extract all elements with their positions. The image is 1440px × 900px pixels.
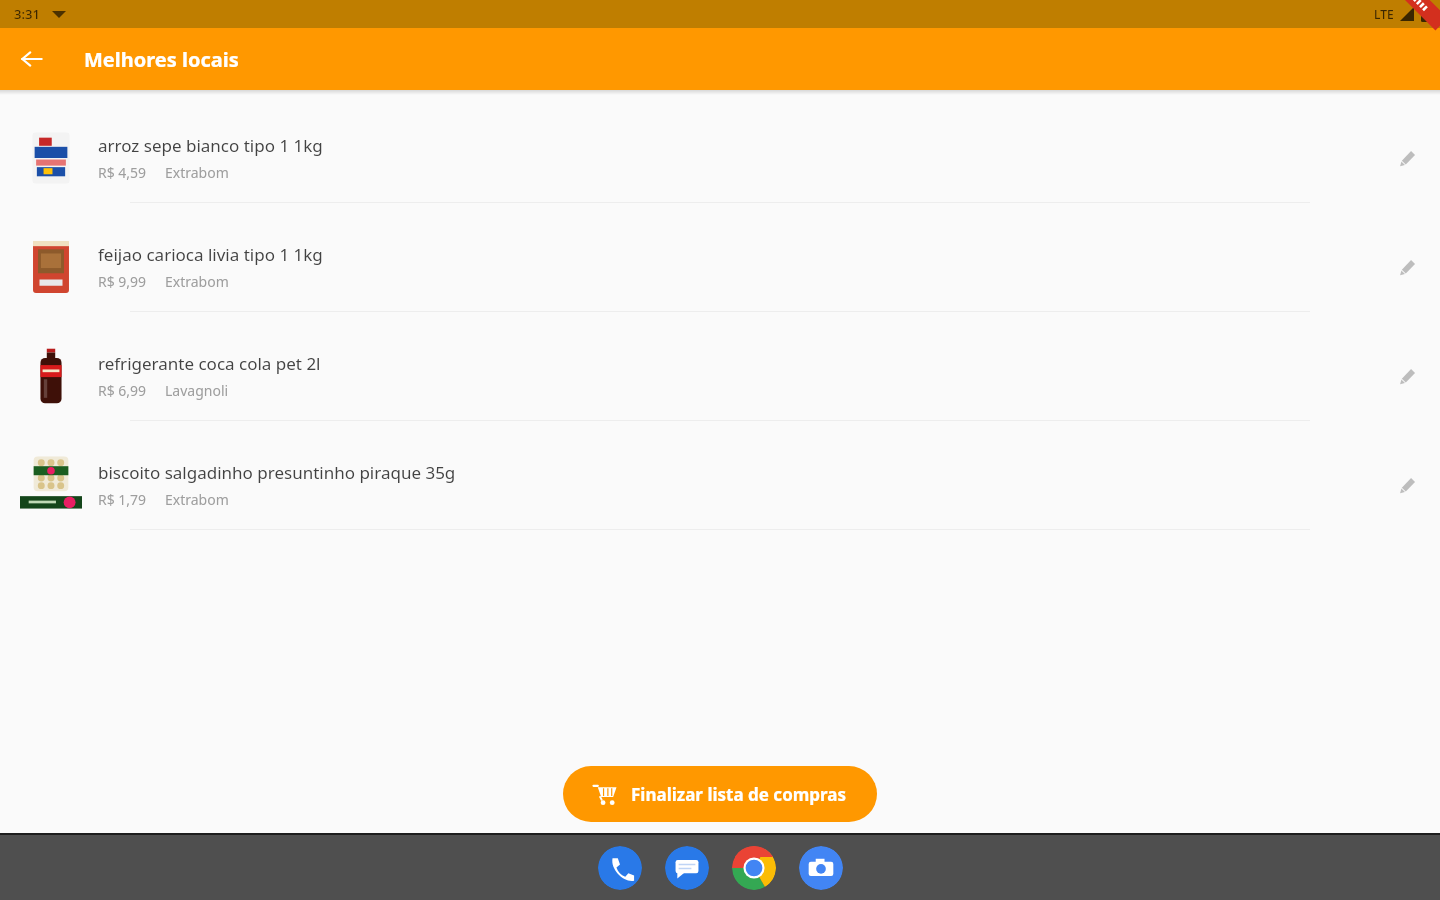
staticText: Extrabom — [165, 272, 229, 291]
staticText: biscoito salgadinho presuntinho piraque … — [98, 461, 456, 484]
button[interactable]: Edit — [1384, 134, 1432, 182]
staticText: refrigerante coca cola pet 2l — [98, 352, 321, 375]
staticText: Extrabom — [165, 163, 229, 182]
staticText: R$ 9,99 — [98, 272, 147, 291]
staticText: R$ 4,59 — [98, 163, 147, 182]
staticText: R$ 1,79 — [98, 490, 147, 509]
button[interactable]: feijao carioca livia tipo 1 1kg — [0, 223, 1440, 332]
button[interactable]: Phone — [598, 846, 642, 890]
button[interactable]: Messages — [665, 846, 709, 890]
button[interactable]: Chrome — [732, 846, 776, 890]
button[interactable]: Camera — [799, 846, 843, 890]
button[interactable]: biscoito salgadinho presuntinho piraque … — [0, 441, 1440, 550]
button[interactable]: Edit — [1384, 243, 1432, 291]
button[interactable]: Edit — [1384, 461, 1432, 509]
staticText: Extrabom — [165, 490, 229, 509]
button[interactable]: Edit — [1384, 352, 1432, 400]
staticText: 3:31 — [14, 5, 40, 23]
button[interactable]: refrigerante coca cola pet 2l — [0, 332, 1440, 441]
staticText: LTE — [1374, 6, 1394, 22]
staticText: feijao carioca livia tipo 1 1kg — [98, 243, 323, 266]
staticText: Melhores locais — [84, 46, 239, 73]
staticText: arroz sepe bianco tipo 1 1kg — [98, 134, 323, 157]
button[interactable]: Finalizar lista de compras — [563, 766, 877, 822]
button[interactable]: Back — [12, 39, 52, 79]
staticText: R$ 6,99 — [98, 381, 147, 400]
button[interactable]: arroz sepe bianco tipo 1 1kg — [0, 114, 1440, 223]
staticText: Lavagnoli — [165, 381, 229, 400]
staticText: Finalizar lista de compras — [631, 783, 847, 806]
